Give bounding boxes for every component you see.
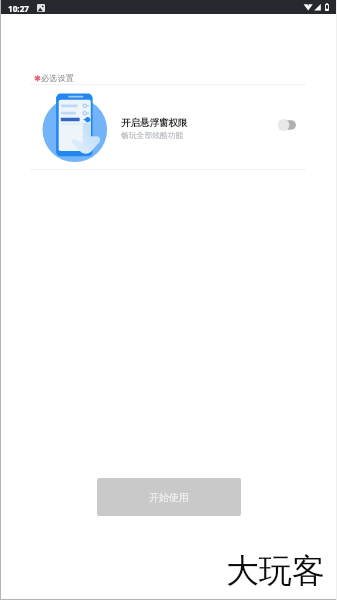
button[interactable] (0, 85, 337, 169)
staticText: 必选设置 (41, 73, 74, 83)
staticText: 畅玩全部炫酷功能 (121, 130, 184, 140)
staticText: 10:27 (8, 3, 30, 14)
button[interactable]: 开始使用 (97, 478, 241, 516)
staticText: 大玩客 (226, 550, 325, 592)
staticText: 开始使用 (149, 491, 189, 504)
button[interactable]: Enable floating window permission (274, 113, 304, 137)
staticText: 开启悬浮窗权限 (121, 117, 188, 129)
